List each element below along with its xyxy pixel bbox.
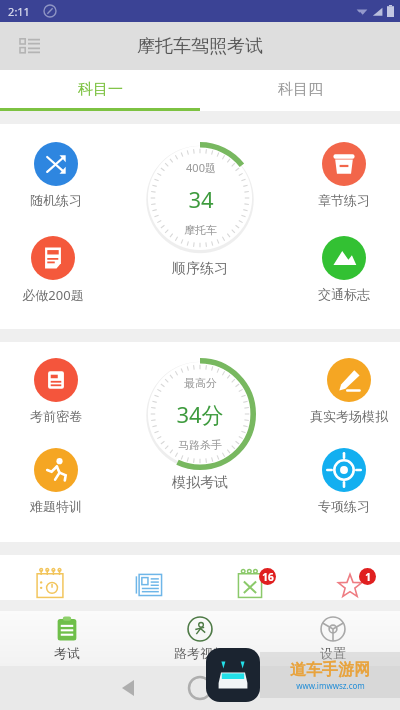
staticText: 考前密卷 <box>30 408 82 424</box>
staticText: www.imwwsz.com <box>296 680 365 691</box>
staticText: 必做200题 <box>22 286 84 304</box>
staticText: 1 <box>365 570 371 584</box>
staticText: 章节练习 <box>318 192 370 208</box>
staticText: 2:11 <box>8 4 30 19</box>
button[interactable]: 最高分 <box>144 358 256 470</box>
staticText: 真实考场模拟 <box>310 408 388 424</box>
button[interactable]: 考前密卷 <box>30 358 82 424</box>
button[interactable]: 科目四 <box>200 70 400 108</box>
staticText: 34 <box>188 184 214 214</box>
staticText: 顺序练习 <box>172 260 228 278</box>
button[interactable]: 考试 <box>17 611 117 666</box>
staticText: 科目一 <box>78 80 123 99</box>
staticText: 最高分 <box>184 376 217 390</box>
button[interactable]: 16 <box>222 568 278 600</box>
staticText: 路考视频 <box>174 645 226 661</box>
staticText: 摩托车 <box>184 223 217 237</box>
button[interactable]: 章节练习 <box>318 142 370 208</box>
staticText: 道车手游网 <box>290 660 370 680</box>
staticText: 随机练习 <box>30 192 82 208</box>
button[interactable]: 难题特训 <box>30 448 82 514</box>
button[interactable]: 真实考场模拟 <box>310 358 388 424</box>
button[interactable]: 科目一 <box>0 70 200 108</box>
button[interactable]: 专项练习 <box>318 448 370 514</box>
staticText: 16 <box>262 570 274 584</box>
button[interactable]: Menu <box>10 26 50 66</box>
staticText: 400题 <box>186 160 216 175</box>
button[interactable]: 400题 <box>144 142 256 254</box>
button[interactable]: 1 <box>322 568 378 600</box>
staticText: 交通标志 <box>318 286 370 302</box>
staticText: 模拟考试 <box>172 474 228 492</box>
staticText: 专项练习 <box>318 498 370 514</box>
button[interactable] <box>22 568 78 600</box>
button[interactable]: 随机练习 <box>30 142 82 208</box>
staticText: 考试 <box>54 645 80 661</box>
staticText: 科目四 <box>278 80 323 99</box>
button[interactable]: 路考视频 <box>150 611 250 666</box>
button[interactable]: 设置 <box>283 611 383 666</box>
staticText: 摩托车驾照考试 <box>137 35 263 58</box>
button[interactable] <box>122 568 178 600</box>
button[interactable]: 交通标志 <box>318 236 370 302</box>
staticText: 马路杀手 <box>178 438 222 452</box>
staticText: 设置 <box>320 645 346 661</box>
button[interactable]: 必做200题 <box>22 236 84 304</box>
staticText: 难题特训 <box>30 498 82 514</box>
staticText: 34分 <box>176 399 224 429</box>
